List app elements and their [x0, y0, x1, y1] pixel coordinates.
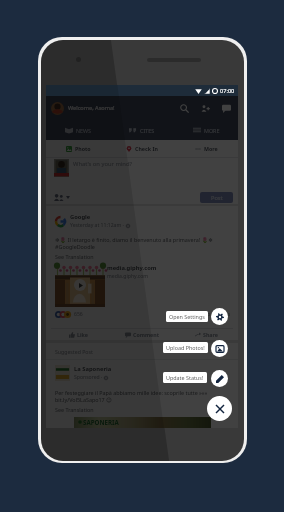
staticText: Check In: [135, 145, 158, 152]
staticText: Open Settings: [169, 313, 205, 320]
staticText: Post: [211, 194, 223, 202]
button[interactable]: Upload Photos!: [211, 340, 228, 357]
button[interactable]: Close menu: [207, 396, 232, 421]
button[interactable]: Like: [46, 329, 110, 340]
staticText: Welcome, Asoma!: [68, 104, 115, 112]
button[interactable]: Open Settings: [166, 311, 208, 322]
staticText: media.giphy.com: [107, 273, 149, 280]
button[interactable]: MORE: [174, 120, 238, 140]
button[interactable]: Check In: [110, 140, 174, 157]
staticText: NEWS: [76, 127, 92, 134]
staticText: Upload Photos!: [166, 344, 205, 351]
staticText: Comment: [133, 331, 159, 338]
button[interactable]: Update Status!: [211, 370, 228, 387]
staticText: Suggested Post: [55, 348, 93, 355]
staticText: Sponsored ·: [74, 374, 104, 381]
button[interactable]: Friend requests: [197, 100, 214, 117]
staticText: See Translation: [55, 253, 94, 260]
staticText: Yesterday at 11:12am ·: [70, 222, 126, 229]
staticText: 07:00: [220, 87, 235, 95]
button[interactable]: Photo: [46, 140, 110, 157]
staticText: MORE: [204, 127, 220, 134]
staticText: See Translation: [55, 406, 94, 413]
button[interactable]: Comment: [110, 329, 174, 340]
staticText: CITES: [140, 127, 155, 134]
button[interactable]: Messages: [218, 100, 235, 117]
staticText: Like: [77, 331, 88, 338]
staticText: Photo: [75, 145, 91, 152]
button[interactable]: Share: [174, 329, 238, 340]
staticText: ❄️🌷 Il letargo è finito, diamo il benven…: [55, 236, 213, 251]
staticText: Update Status!: [166, 374, 204, 381]
staticText: Per festeggiare il Papà abbiamo mille id…: [55, 389, 208, 404]
staticText: 656: [74, 311, 83, 318]
button[interactable]: Upload Photos!: [163, 342, 208, 353]
button[interactable]: NEWS: [46, 120, 110, 140]
button[interactable]: Update Status!: [163, 372, 207, 383]
button[interactable]: Open Settings: [211, 308, 228, 325]
staticText: What's on your mind?: [73, 160, 132, 168]
staticText: media.giphy.com: [107, 264, 157, 272]
staticText: More: [204, 145, 218, 152]
button[interactable]: Search: [176, 100, 193, 117]
staticText: SAPONERIA: [83, 418, 119, 426]
staticText: Share: [203, 331, 218, 338]
button[interactable]: Post: [200, 192, 233, 203]
button[interactable]: CITES: [110, 120, 174, 140]
staticText: 13 Comments: [197, 311, 231, 318]
staticText: Google: [70, 213, 91, 221]
button[interactable]: More: [174, 140, 238, 157]
staticText: La Saponeria: [74, 365, 112, 373]
